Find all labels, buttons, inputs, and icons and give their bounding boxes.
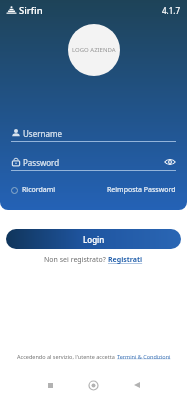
button[interactable]: Reimposta Password (107, 185, 176, 195)
button[interactable]: Show password (164, 156, 176, 168)
staticText: 4.1.7 (162, 5, 181, 16)
staticText: LOGO AZIENDA (72, 46, 116, 54)
button[interactable]: Registrati (108, 255, 143, 265)
button[interactable]: Login (6, 229, 181, 249)
button[interactable]: Sirfin (6, 4, 43, 17)
button[interactable]: Password (0, 155, 187, 171)
staticText: Sirfin (19, 4, 43, 17)
staticText: Login (83, 234, 105, 245)
staticText: Password (23, 157, 60, 168)
button[interactable]: Username (0, 126, 187, 142)
button[interactable]: Back (115, 371, 158, 399)
staticText: Ricordami (22, 185, 56, 195)
staticText: Accedendo al servizio, l'utente accetta (17, 353, 117, 360)
button[interactable]: Ricordami (11, 185, 56, 195)
button[interactable]: Home (72, 371, 115, 399)
staticText: Username (23, 128, 62, 139)
staticText: Non sei registrato? (44, 255, 108, 265)
button[interactable]: Recents (29, 371, 72, 399)
button[interactable]: Termini & Condizioni (117, 353, 171, 360)
